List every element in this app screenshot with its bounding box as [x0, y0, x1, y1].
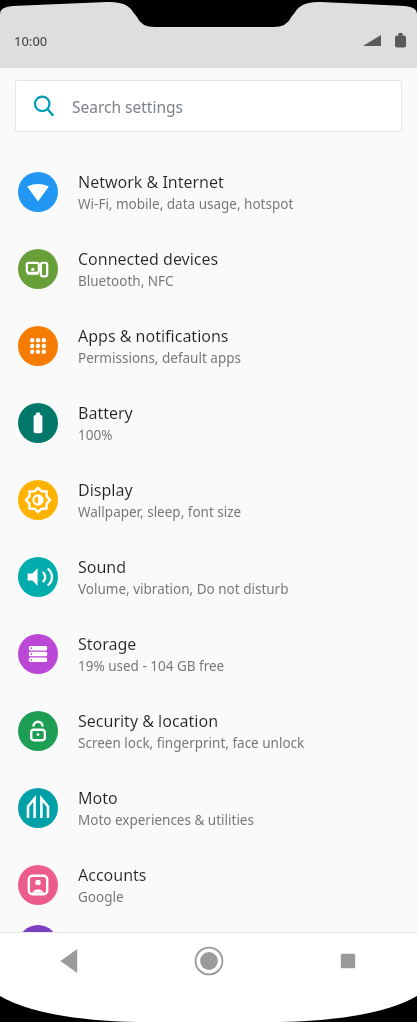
staticText: Search settings [72, 96, 183, 117]
staticText: Wi-Fi, mobile, data usage, hotspot [78, 195, 294, 213]
button[interactable]: Search settings [15, 80, 402, 132]
staticText: Bluetooth, NFC [78, 272, 174, 290]
staticText: Google [78, 888, 124, 906]
button[interactable]: Battery [0, 384, 417, 461]
button[interactable]: Sound [0, 538, 417, 615]
button[interactable]: Display [0, 461, 417, 538]
staticText: 19% used - 104 GB free [78, 657, 225, 675]
button[interactable]: Security & location [0, 692, 417, 769]
button[interactable]: Storage [0, 615, 417, 692]
staticText: Apps & notifications [78, 325, 229, 347]
staticText: Moto [78, 787, 118, 809]
button[interactable]: Recent apps [278, 933, 417, 989]
button[interactable]: Connected devices [0, 230, 417, 307]
staticText: Network & Internet [78, 171, 224, 193]
staticText: Connected devices [78, 248, 219, 270]
staticText: Moto experiences & utilities [78, 811, 254, 829]
staticText: Storage [78, 633, 137, 655]
button[interactable]: Moto [0, 769, 417, 846]
staticText: Accounts [78, 864, 147, 886]
staticText: Wallpaper, sleep, font size [78, 503, 242, 521]
button[interactable]: Accounts [0, 846, 417, 923]
button[interactable]: Network & Internet [0, 153, 417, 230]
staticText: Battery [78, 402, 133, 424]
staticText: Permissions, default apps [78, 349, 241, 367]
staticText: Security & location [78, 710, 219, 732]
button[interactable]: Home [139, 933, 278, 989]
button[interactable]: Back [0, 933, 139, 989]
staticText: Volume, vibration, Do not disturb [78, 580, 289, 598]
staticText: Display [78, 479, 133, 501]
staticText: 10:00 [14, 32, 48, 50]
staticText: 100% [78, 426, 113, 444]
staticText: Sound [78, 556, 127, 578]
staticText: Screen lock, fingerprint, face unlock [78, 734, 305, 752]
button[interactable]: Apps & notifications [0, 307, 417, 384]
